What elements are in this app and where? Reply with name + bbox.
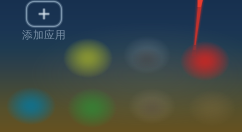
button[interactable]: 添加应用 (26, 1, 61, 26)
staticText: 添加应用 (22, 28, 66, 41)
